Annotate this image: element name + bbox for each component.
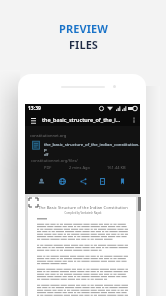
staticText: the_basic_structure_of_the_indian_consti… bbox=[44, 141, 140, 157]
button[interactable]: Menu bbox=[28, 115, 38, 125]
button[interactable]: Copy bbox=[97, 176, 107, 186]
staticText: constitutionnet.org/files/ bbox=[31, 158, 78, 163]
button[interactable]: More options bbox=[129, 115, 139, 125]
staticText: FILES bbox=[69, 37, 98, 52]
button[interactable]: Full screen bbox=[29, 198, 38, 207]
staticText: 161.44 KB bbox=[107, 165, 126, 170]
button[interactable]: Open in browser bbox=[57, 176, 67, 186]
staticText: 2 mins Ago bbox=[69, 165, 90, 170]
staticText: the_basic_structure_of_the_i... bbox=[42, 116, 121, 123]
staticText: constitutionnet.org bbox=[30, 133, 67, 138]
button[interactable]: Share bbox=[78, 176, 88, 186]
button[interactable]: Account bbox=[36, 176, 46, 186]
staticText: The Basic Structure of the Indian Consti… bbox=[29, 205, 137, 211]
staticText: PREVIEW bbox=[59, 21, 108, 36]
staticText: Compiled by Venkatesh Nayak bbox=[29, 211, 137, 215]
staticText: 13:39 bbox=[28, 105, 41, 112]
button[interactable]: Save bbox=[117, 176, 127, 186]
staticText: PDF bbox=[44, 165, 52, 170]
